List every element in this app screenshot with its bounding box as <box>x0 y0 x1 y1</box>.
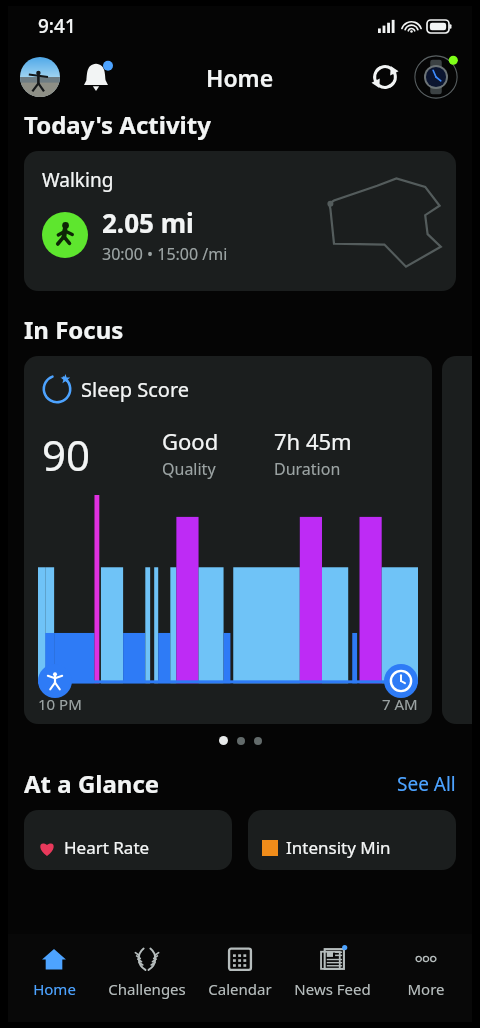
staticText: 90 <box>42 426 162 483</box>
button[interactable]: Walking <box>24 151 456 291</box>
staticText: Quality <box>162 458 216 480</box>
button[interactable]: Profile <box>20 57 60 97</box>
button[interactable]: Home <box>8 934 100 1022</box>
button[interactable]: Sync <box>364 56 406 98</box>
button[interactable]: More <box>379 934 472 1022</box>
button[interactable]: Device <box>412 53 460 101</box>
staticText: Heart Rate <box>64 836 150 859</box>
staticText: Duration <box>274 458 341 480</box>
staticText: More <box>407 979 445 999</box>
button[interactable]: Heart Rate <box>24 810 232 870</box>
staticText: Challenges <box>108 979 186 999</box>
staticText: See All <box>397 771 456 797</box>
staticText: 7h 45m <box>274 426 352 456</box>
button[interactable]: Intensity Min <box>248 810 456 870</box>
staticText: 30:00 • 15:00 /mi <box>102 243 228 265</box>
button[interactable]: Calendar <box>193 934 286 1022</box>
staticText: Sleep Score <box>81 376 190 403</box>
staticText: In Focus <box>24 313 124 346</box>
button[interactable]: Sleep Score <box>24 356 432 724</box>
staticText: Intensity Min <box>286 836 391 859</box>
staticText: Today's Activity <box>24 108 211 141</box>
staticText: 10 PM <box>38 694 82 714</box>
staticText: 9:41 <box>38 13 76 39</box>
staticText: News Feed <box>294 979 371 999</box>
staticText: Home <box>206 62 274 93</box>
button[interactable]: News Feed <box>286 934 379 1022</box>
button[interactable]: See All <box>397 771 456 797</box>
staticText: Good <box>162 426 219 456</box>
staticText: Calendar <box>208 979 272 999</box>
staticText: Home <box>33 979 76 999</box>
staticText: 2.05 mi <box>102 205 194 240</box>
staticText: Walking <box>42 167 114 193</box>
button[interactable]: Notifications <box>76 57 116 97</box>
button[interactable]: Challenges <box>100 934 193 1022</box>
staticText: At a Glance <box>24 767 397 800</box>
staticText: 7 AM <box>382 694 418 714</box>
